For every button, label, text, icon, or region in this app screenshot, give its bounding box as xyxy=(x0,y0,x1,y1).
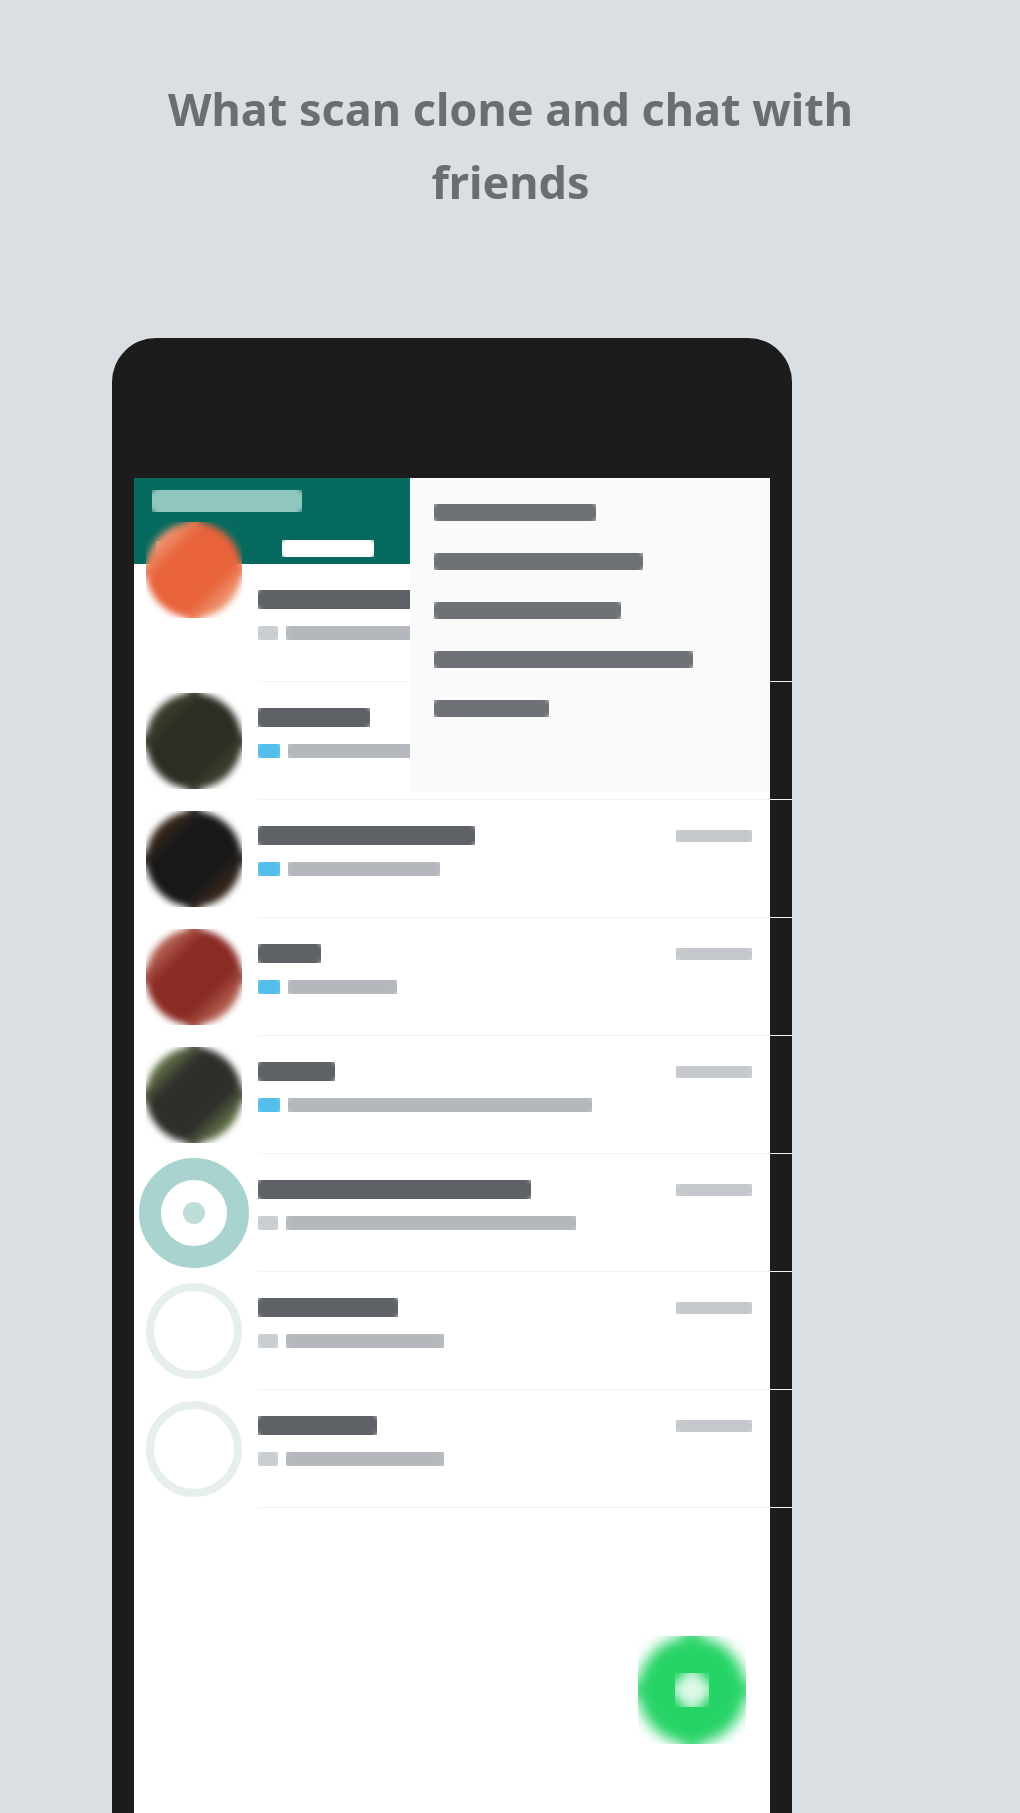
button[interactable] xyxy=(410,635,770,684)
button[interactable]: New chat xyxy=(630,1628,754,1752)
button[interactable] xyxy=(134,1154,770,1272)
button[interactable] xyxy=(276,534,380,563)
button[interactable] xyxy=(134,564,770,682)
button[interactable] xyxy=(410,684,770,733)
button[interactable]: Camera tab xyxy=(150,535,192,563)
button[interactable] xyxy=(410,537,770,586)
button[interactable] xyxy=(134,682,770,800)
button[interactable] xyxy=(410,586,770,635)
staticText: What scan clone and chat with xyxy=(168,78,853,139)
staticText: friends xyxy=(431,151,590,212)
button[interactable] xyxy=(134,1036,770,1154)
button[interactable] xyxy=(134,1272,770,1390)
button[interactable] xyxy=(134,800,770,918)
button[interactable] xyxy=(410,488,770,537)
button[interactable] xyxy=(134,918,770,1036)
button[interactable] xyxy=(134,1390,770,1508)
button[interactable] xyxy=(148,486,306,516)
